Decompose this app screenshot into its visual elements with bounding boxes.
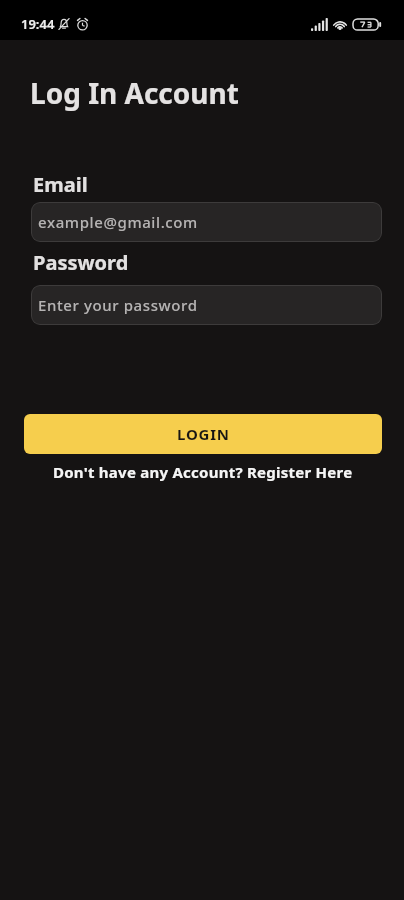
staticText: example@gmail.com [38, 212, 198, 232]
staticText: Password [33, 249, 129, 276]
button[interactable]: Don't have any Account? Register Here [53, 462, 353, 482]
staticText: Enter your password [38, 295, 198, 315]
button[interactable]: Enter your password [31, 285, 382, 325]
staticText: LOGIN [177, 424, 230, 444]
staticText: Email [33, 171, 88, 198]
staticText: 19:44 [21, 15, 55, 33]
button[interactable]: LOGIN [24, 414, 382, 454]
button[interactable]: example@gmail.com [31, 202, 382, 242]
staticText: Log In Account [30, 74, 239, 112]
